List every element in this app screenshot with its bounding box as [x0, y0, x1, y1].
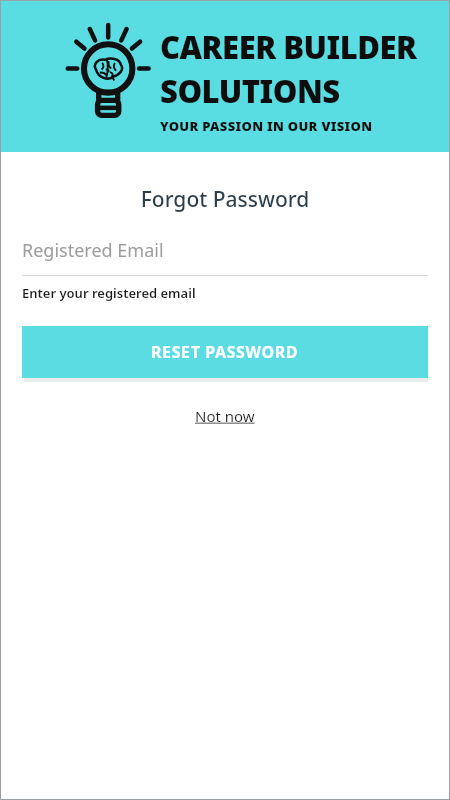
staticText: Forgot Password [0, 185, 450, 214]
staticText: RESET PASSWORD [151, 341, 299, 363]
button[interactable]: Not now [185, 402, 265, 430]
staticText: CAREER BUILDER [160, 26, 417, 68]
staticText: SOLUTIONS [160, 70, 340, 112]
staticText: YOUR PASSION IN OUR VISION [160, 117, 373, 135]
staticText: Registered Email [22, 238, 164, 263]
staticText: Enter your registered email [22, 284, 196, 302]
button[interactable]: Registered Email [22, 238, 428, 276]
staticText: Not now [195, 406, 255, 426]
button[interactable]: RESET PASSWORD [22, 326, 428, 378]
